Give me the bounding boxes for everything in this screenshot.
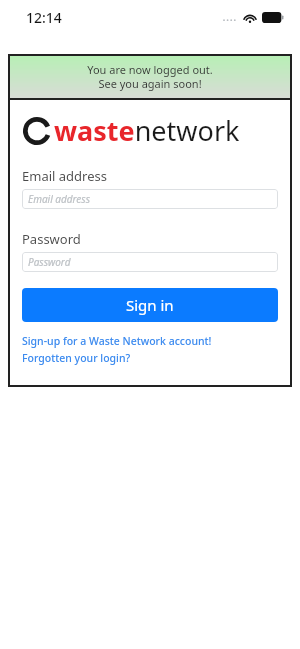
staticText: Email address <box>22 167 107 185</box>
staticText: Sign-up for a Waste Network account! <box>22 334 212 348</box>
button[interactable]: Sign in <box>22 288 278 322</box>
staticText: Email address <box>28 192 90 206</box>
staticText: You are now logged out. See you again so… <box>87 62 213 91</box>
button[interactable]: Email address <box>22 189 278 209</box>
other: Waste Network logo <box>22 116 52 146</box>
staticText: Forgotten your login? <box>22 351 131 365</box>
button[interactable]: Sign-up for a Waste Network account! <box>22 334 212 348</box>
button[interactable]: Password <box>22 252 278 272</box>
staticText: 12:14 <box>26 8 62 27</box>
staticText: Sign in <box>126 295 174 315</box>
staticText: Password <box>28 255 71 269</box>
staticText: wastenetwork <box>54 112 240 149</box>
staticText: Password <box>22 230 81 248</box>
button[interactable]: Forgotten your login? <box>22 351 131 365</box>
